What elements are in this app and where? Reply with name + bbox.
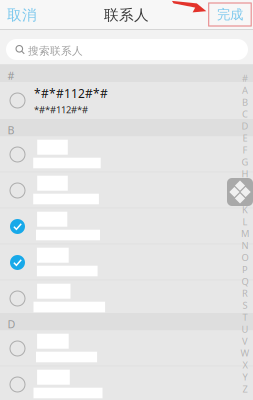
button[interactable]: 搜索联系人	[6, 39, 248, 60]
staticText: N	[241, 239, 248, 252]
button[interactable]	[0, 136, 253, 172]
button[interactable]: *#*#112#*#	[0, 82, 253, 119]
button[interactable]	[0, 366, 253, 400]
staticText: H	[241, 168, 248, 180]
staticText: K	[242, 203, 248, 216]
staticText: A	[242, 84, 248, 96]
staticText: I	[243, 179, 246, 192]
staticText: T	[242, 311, 247, 323]
staticText: 取消	[7, 6, 37, 24]
staticText: B	[7, 123, 14, 137]
staticText: 联系人	[104, 6, 149, 24]
staticText: D	[7, 317, 15, 331]
staticText: P	[242, 263, 248, 276]
staticText: Q	[241, 275, 248, 287]
button[interactable]	[0, 280, 253, 316]
staticText: D	[241, 120, 248, 132]
staticText: M	[241, 227, 249, 240]
staticText: W	[240, 347, 249, 359]
button[interactable]: 完成	[209, 3, 251, 26]
staticText: Z	[242, 383, 247, 395]
staticText: E	[242, 132, 247, 144]
staticText: #	[242, 72, 248, 84]
button[interactable]: Alphabet index	[239, 72, 251, 395]
button[interactable]	[0, 244, 253, 280]
staticText: *#*#112#*#	[34, 103, 88, 116]
staticText: F	[242, 144, 247, 156]
staticText: Y	[242, 371, 247, 383]
staticText: J	[243, 191, 246, 204]
staticText: 完成	[217, 6, 243, 23]
staticText: O	[241, 251, 248, 264]
staticText: U	[241, 323, 248, 335]
staticText: G	[241, 156, 248, 168]
staticText: X	[242, 359, 247, 371]
staticText: C	[242, 108, 248, 120]
button[interactable]	[0, 172, 253, 208]
staticText: L	[242, 215, 247, 228]
button[interactable]	[0, 330, 253, 366]
staticText: R	[242, 287, 248, 299]
button[interactable]: 取消	[7, 0, 41, 30]
staticText: #	[7, 68, 14, 83]
staticText: *#*#112#*#	[34, 85, 108, 101]
staticText: S	[242, 299, 247, 311]
button[interactable]	[0, 208, 253, 244]
staticText: V	[242, 335, 248, 347]
staticText: 搜索联系人	[28, 44, 83, 58]
staticText: B	[242, 96, 248, 108]
